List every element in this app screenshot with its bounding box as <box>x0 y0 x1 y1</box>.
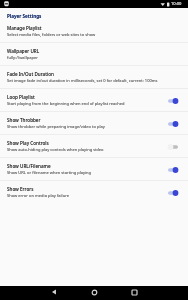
button[interactable]: Manage Playlist <box>0 20 188 43</box>
staticText: Show URL or filename when starting playi… <box>7 170 92 176</box>
staticText: Loop Playlist <box>7 94 35 100</box>
staticText: Player Settings <box>7 13 42 19</box>
staticText: Fade In/Out Duration <box>7 71 54 77</box>
staticText: Show Play Controls <box>7 140 49 146</box>
staticText: Show error on media play failure <box>7 193 70 199</box>
button[interactable]: Show Play Controls <box>0 135 188 158</box>
button[interactable]: Back <box>44 285 64 299</box>
staticText: Show URL or filename when starting playi… <box>7 170 92 176</box>
button[interactable]: Recent apps <box>124 285 144 299</box>
staticText: Manage Playlist <box>7 25 42 31</box>
button[interactable]: Show Errors <box>0 181 188 204</box>
button[interactable]: Wallpaper URL <box>0 43 188 66</box>
staticText: Set image fade in/out duration in millis… <box>7 78 158 84</box>
staticText: Wallpaper URL <box>7 48 40 54</box>
staticText: Loop Playlist <box>7 94 35 100</box>
button[interactable]: Toggle on <box>168 95 178 107</box>
staticText: Show URL/Filename <box>7 163 51 169</box>
staticText: Show throbber while preparing image/vide… <box>7 124 105 130</box>
staticText: Show auto-hiding play controls when play… <box>7 147 104 153</box>
staticText: Show Throbber <box>7 117 41 123</box>
button[interactable]: Fade In/Out Duration <box>0 66 188 89</box>
button[interactable]: Toggle on <box>168 164 178 176</box>
staticText: Select media files, folders or web sites… <box>7 32 96 38</box>
staticText: Show Play Controls <box>7 140 49 146</box>
button[interactable]: Toggle on <box>168 118 178 130</box>
button[interactable]: Toggle on <box>168 187 178 199</box>
button[interactable]: Show Throbber <box>0 112 188 135</box>
staticText: Start playing from the beginning when en… <box>7 101 125 107</box>
staticText: Show Throbber <box>7 117 41 123</box>
staticText: fully://wallpaper <box>7 55 38 61</box>
staticText: Fade In/Out Duration <box>7 71 54 77</box>
staticText: Wallpaper URL <box>7 48 40 54</box>
button[interactable]: Toggle off <box>168 141 178 153</box>
staticText: Show Errors <box>7 186 34 192</box>
button[interactable]: Show URL/Filename <box>0 158 188 181</box>
staticText: Show Errors <box>7 186 34 192</box>
staticText: Show throbber while preparing image/vide… <box>7 124 105 130</box>
staticText: Set image fade in/out duration in millis… <box>7 78 158 84</box>
staticText: Show auto-hiding play controls when play… <box>7 147 104 153</box>
staticText: fully://wallpaper <box>7 55 38 61</box>
staticText: 10:00 <box>171 1 182 7</box>
staticText: Manage Playlist <box>7 25 42 31</box>
staticText: Start playing from the beginning when en… <box>7 101 125 107</box>
button[interactable]: Loop Playlist <box>0 89 188 112</box>
staticText: Show URL/Filename <box>7 163 51 169</box>
button[interactable]: Home <box>84 285 104 299</box>
staticText: Show error on media play failure <box>7 193 70 199</box>
staticText: Player Settings <box>7 13 42 19</box>
staticText: Select media files, folders or web sites… <box>7 32 96 38</box>
